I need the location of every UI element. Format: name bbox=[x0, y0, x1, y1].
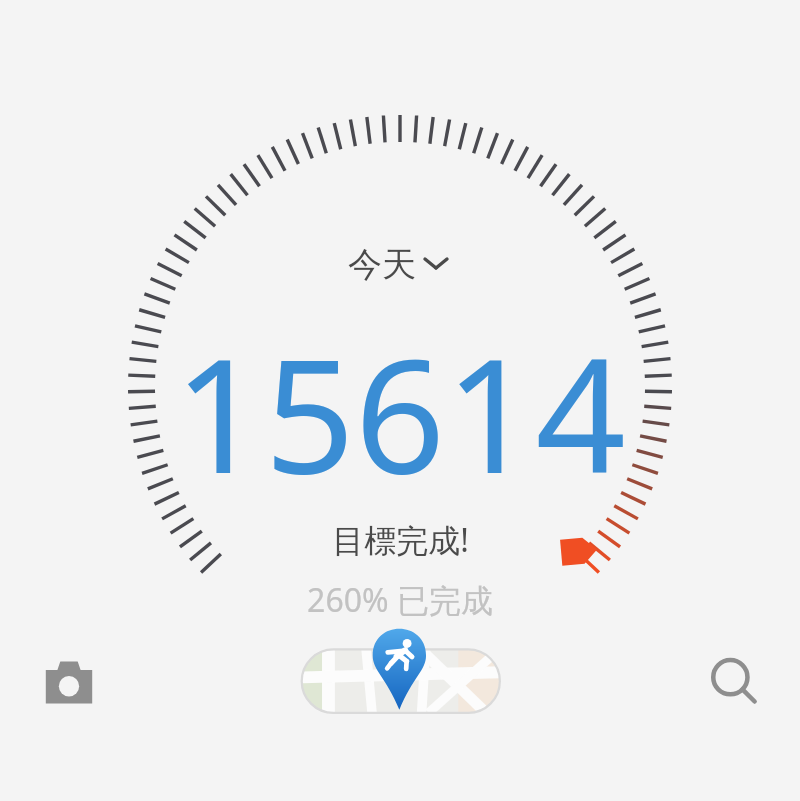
button[interactable]: Camera bbox=[40, 656, 98, 710]
button[interactable]: Search bbox=[706, 654, 764, 712]
staticText: 目標完成! bbox=[332, 518, 469, 562]
staticText: 260% 已完成 bbox=[307, 578, 493, 622]
staticText: 15614 bbox=[174, 304, 626, 519]
button[interactable]: Start run tracking bbox=[298, 626, 504, 718]
button[interactable]: 今天 bbox=[348, 243, 416, 286]
staticText: 今天 bbox=[348, 243, 416, 286]
